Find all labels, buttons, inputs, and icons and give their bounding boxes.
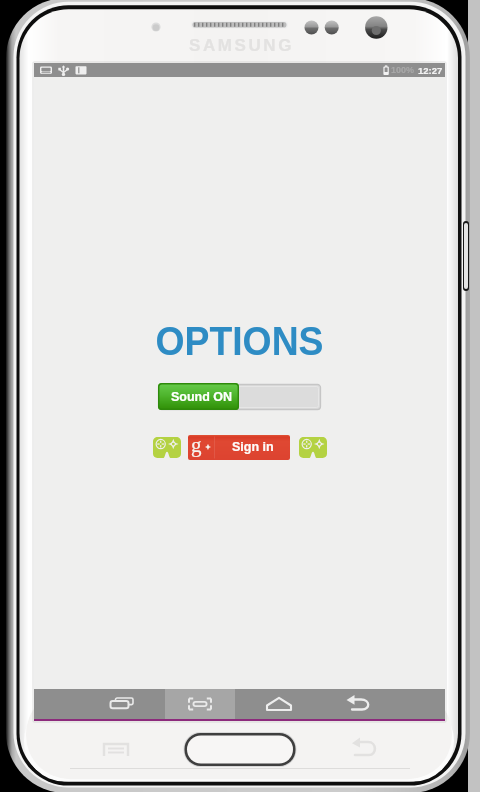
staticText: 100% xyxy=(391,65,415,75)
button[interactable]: Games xyxy=(153,437,181,458)
staticText: Sound ON xyxy=(171,390,233,404)
button[interactable]: Back xyxy=(323,689,393,719)
button[interactable]: g xyxy=(188,435,290,460)
staticText: SAMSUNG xyxy=(160,36,323,55)
button[interactable]: Games xyxy=(299,437,327,458)
button[interactable]: Recent apps xyxy=(87,689,157,719)
staticText: g xyxy=(191,435,202,456)
staticText: Sign in xyxy=(232,440,274,454)
button[interactable]: Sound ON xyxy=(158,383,321,410)
button[interactable]: Capture xyxy=(165,689,235,719)
staticText: OPTIONS xyxy=(52,318,426,364)
staticText: 12:27 xyxy=(418,65,443,76)
button[interactable]: Home xyxy=(244,689,314,719)
